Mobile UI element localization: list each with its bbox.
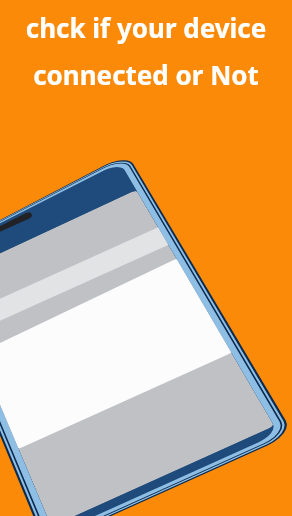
staticText: chck if your device xyxy=(0,10,292,45)
staticText: connected or Not xyxy=(0,57,292,92)
